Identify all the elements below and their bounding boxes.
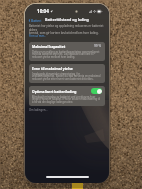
button[interactable]: Back	[28, 18, 42, 22]
staticText: Batteri	[31, 18, 42, 22]
button[interactable]: Maksimal kapasitet	[29, 42, 105, 61]
staticText: Maksimal kapasitet	[32, 44, 66, 49]
button[interactable]: Optimalisert batterilading	[29, 86, 105, 106]
staticText: 10:04	[37, 8, 49, 14]
staticText: Om ladingen...	[29, 108, 48, 112]
button[interactable]: Evne til maksimal ytelse	[29, 64, 105, 83]
staticText: Minsker forringelse av batteriet ved å r…	[32, 95, 101, 104]
staticText: Finn ut mer...	[29, 34, 46, 38]
staticText: Dette er en måling av batterikapasiteten…	[32, 50, 100, 59]
button[interactable]: Optimized battery charging toggle	[91, 88, 102, 94]
staticText: Optimalisert batterilading	[32, 89, 77, 94]
staticText: Evne til maksimal ytelse	[32, 66, 73, 71]
staticText: Innebygde dynamiske strømstyring, for ve…	[32, 72, 101, 81]
staticText: 99 %	[94, 44, 102, 48]
staticText: Batteritilstand og lading	[45, 17, 89, 22]
staticText: Batteriet har ytelse og oppladning redus…	[29, 24, 105, 34]
